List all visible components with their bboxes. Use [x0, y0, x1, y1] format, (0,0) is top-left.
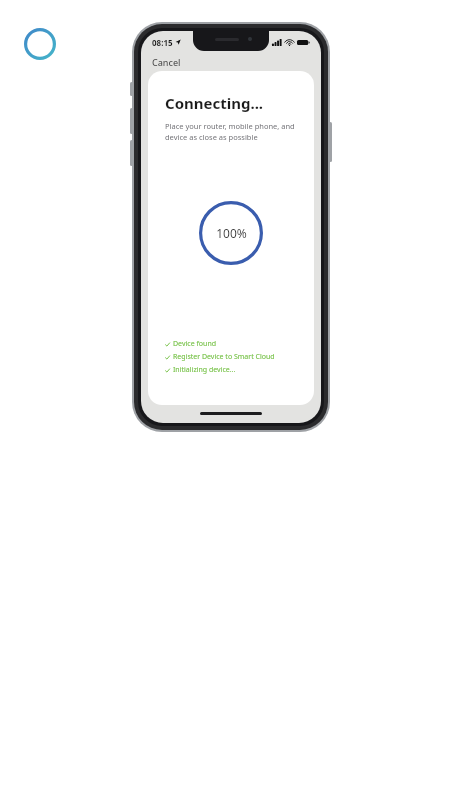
staticText: Initializing device...: [173, 365, 236, 375]
button[interactable]: Cancel: [141, 53, 321, 71]
staticText: Device found: [173, 339, 217, 349]
staticText: Register Device to Smart Cloud: [173, 352, 275, 362]
staticText: 100%: [216, 225, 247, 241]
staticText: Place your router, mobile phone, and dev…: [165, 121, 295, 142]
staticText: 08:15: [152, 37, 173, 48]
other: Home indicator: [200, 412, 262, 415]
staticText: Connecting...: [165, 93, 264, 113]
staticText: Cancel: [152, 56, 181, 68]
